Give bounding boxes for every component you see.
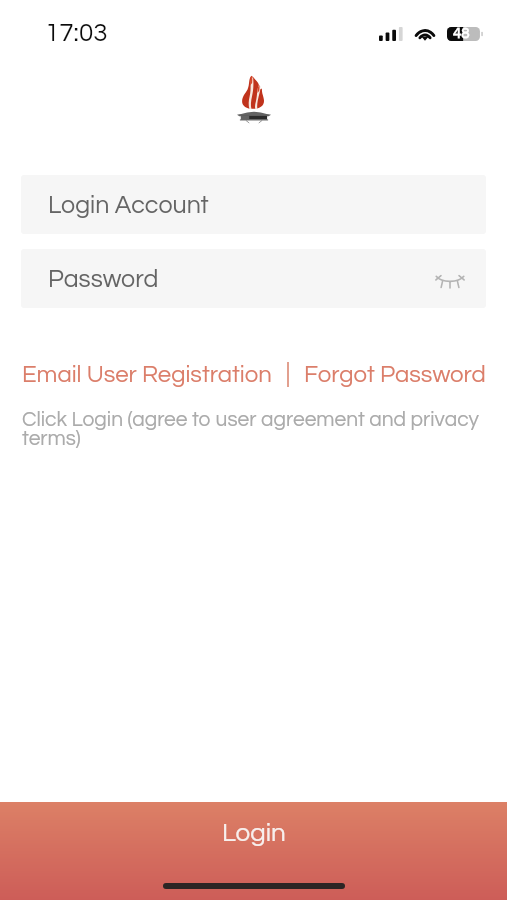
button[interactable]: Forgot Password <box>304 362 486 387</box>
staticText: 48 <box>453 26 470 41</box>
staticText: Forgot Password <box>304 362 486 387</box>
button[interactable]: Show password <box>428 259 472 303</box>
staticText: Login <box>222 820 286 847</box>
staticText: Click Login (agree to user agreement and… <box>22 409 485 449</box>
staticText: Login Account <box>48 192 209 218</box>
button[interactable] <box>21 249 486 308</box>
staticText: Password <box>48 266 159 292</box>
button[interactable]: Email User Registration <box>22 362 272 387</box>
button[interactable]: Login <box>0 802 507 900</box>
button[interactable]: Login Account <box>21 175 486 234</box>
staticText: 17:03 <box>45 20 108 47</box>
staticText: Email User Registration <box>22 362 272 387</box>
